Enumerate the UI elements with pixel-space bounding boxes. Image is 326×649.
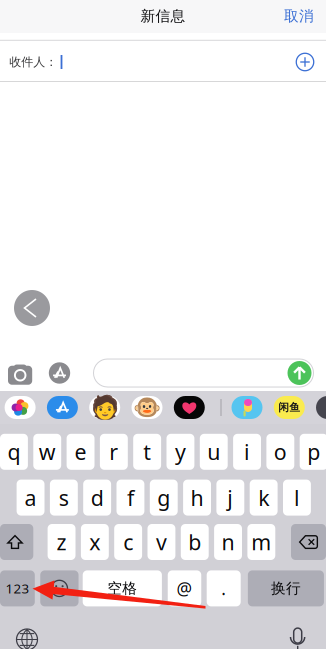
staticText: s bbox=[59, 483, 69, 512]
button[interactable]: 123 bbox=[0, 570, 35, 606]
staticText: l bbox=[294, 483, 300, 512]
staticText: p bbox=[307, 438, 320, 466]
staticText: b bbox=[188, 528, 201, 556]
staticText: h bbox=[190, 483, 203, 512]
button[interactable]: Shift bbox=[0, 524, 33, 560]
staticText: 🐵 bbox=[133, 395, 161, 420]
button[interactable]: Switch keyboard bbox=[12, 624, 42, 649]
button[interactable]: p bbox=[300, 434, 326, 470]
button[interactable]: 取消 bbox=[276, 1, 322, 31]
button[interactable]: t bbox=[133, 434, 161, 470]
button[interactable]: s bbox=[50, 480, 78, 516]
button[interactable]: o bbox=[266, 434, 294, 470]
button[interactable]: f bbox=[116, 480, 144, 516]
button[interactable]: Camera bbox=[4, 358, 36, 390]
button[interactable]: @ bbox=[168, 570, 201, 606]
button[interactable]: Dictation bbox=[283, 624, 313, 649]
button[interactable] bbox=[316, 396, 326, 419]
button[interactable]: j bbox=[216, 480, 244, 516]
button[interactable]: b bbox=[181, 524, 209, 560]
button[interactable]: y bbox=[166, 434, 194, 470]
staticText: t bbox=[143, 438, 151, 466]
button[interactable]: r bbox=[100, 434, 128, 470]
button[interactable]: App Store bbox=[43, 357, 75, 389]
button[interactable]: Delete bbox=[291, 524, 326, 560]
button[interactable]: l bbox=[283, 480, 311, 516]
button[interactable]: z bbox=[48, 524, 75, 560]
button[interactable]: x bbox=[81, 524, 109, 560]
button[interactable]: . bbox=[207, 570, 241, 606]
button[interactable]: m bbox=[247, 524, 275, 560]
staticText: d bbox=[91, 483, 104, 512]
staticText: 🧑 bbox=[91, 395, 119, 420]
button[interactable] bbox=[5, 396, 36, 419]
button[interactable] bbox=[231, 396, 262, 419]
button[interactable]: 换行 bbox=[248, 570, 324, 606]
button[interactable]: Emoji bbox=[40, 570, 78, 606]
button[interactable]: w bbox=[33, 434, 61, 470]
staticText: 123 bbox=[5, 579, 29, 597]
staticText: . bbox=[221, 577, 226, 600]
staticText: 换行 bbox=[271, 579, 301, 597]
button[interactable]: Send bbox=[286, 360, 312, 386]
button[interactable]: 🐵 bbox=[131, 396, 162, 419]
button[interactable]: u bbox=[200, 434, 228, 470]
button[interactable]: n bbox=[214, 524, 242, 560]
button[interactable]: Show apps bbox=[14, 290, 50, 326]
staticText: 新信息 bbox=[140, 7, 185, 25]
staticText: i bbox=[244, 438, 250, 466]
staticText: r bbox=[109, 438, 118, 466]
staticText: g bbox=[157, 483, 170, 512]
button[interactable]: 闲鱼 bbox=[274, 396, 305, 419]
button[interactable]: h bbox=[183, 480, 211, 516]
staticText: @ bbox=[176, 577, 192, 600]
staticText: y bbox=[175, 438, 186, 466]
staticText: 闲鱼 bbox=[278, 401, 300, 414]
button[interactable] bbox=[47, 396, 78, 419]
staticText: n bbox=[221, 528, 234, 556]
button[interactable]: Add contact bbox=[288, 45, 322, 79]
staticText: c bbox=[123, 528, 133, 556]
staticText: e bbox=[74, 438, 86, 466]
staticText: 取消 bbox=[284, 7, 314, 25]
button[interactable] bbox=[174, 396, 205, 419]
button[interactable]: e bbox=[67, 434, 94, 470]
staticText: f bbox=[127, 483, 134, 512]
button[interactable]: g bbox=[150, 480, 178, 516]
button[interactable]: q bbox=[0, 434, 28, 470]
staticText: j bbox=[227, 483, 233, 512]
staticText: w bbox=[39, 438, 56, 466]
button[interactable]: i bbox=[233, 434, 261, 470]
staticText: x bbox=[89, 528, 100, 556]
button[interactable]: k bbox=[250, 480, 278, 516]
button[interactable]: 空格 bbox=[83, 570, 162, 606]
staticText: m bbox=[251, 528, 271, 556]
staticText: 空格 bbox=[107, 579, 137, 597]
button[interactable]: 🧑 bbox=[89, 396, 120, 419]
button[interactable]: d bbox=[83, 480, 111, 516]
staticText: k bbox=[258, 483, 269, 512]
staticText: v bbox=[156, 528, 167, 556]
staticText: a bbox=[25, 483, 37, 512]
button[interactable]: v bbox=[147, 524, 175, 560]
staticText: z bbox=[56, 528, 66, 556]
staticText: 收件人： bbox=[9, 55, 57, 69]
button[interactable]: c bbox=[114, 524, 142, 560]
button[interactable]: a bbox=[17, 480, 44, 516]
staticText: o bbox=[274, 438, 287, 466]
staticText: u bbox=[207, 438, 220, 466]
staticText: q bbox=[7, 438, 20, 466]
